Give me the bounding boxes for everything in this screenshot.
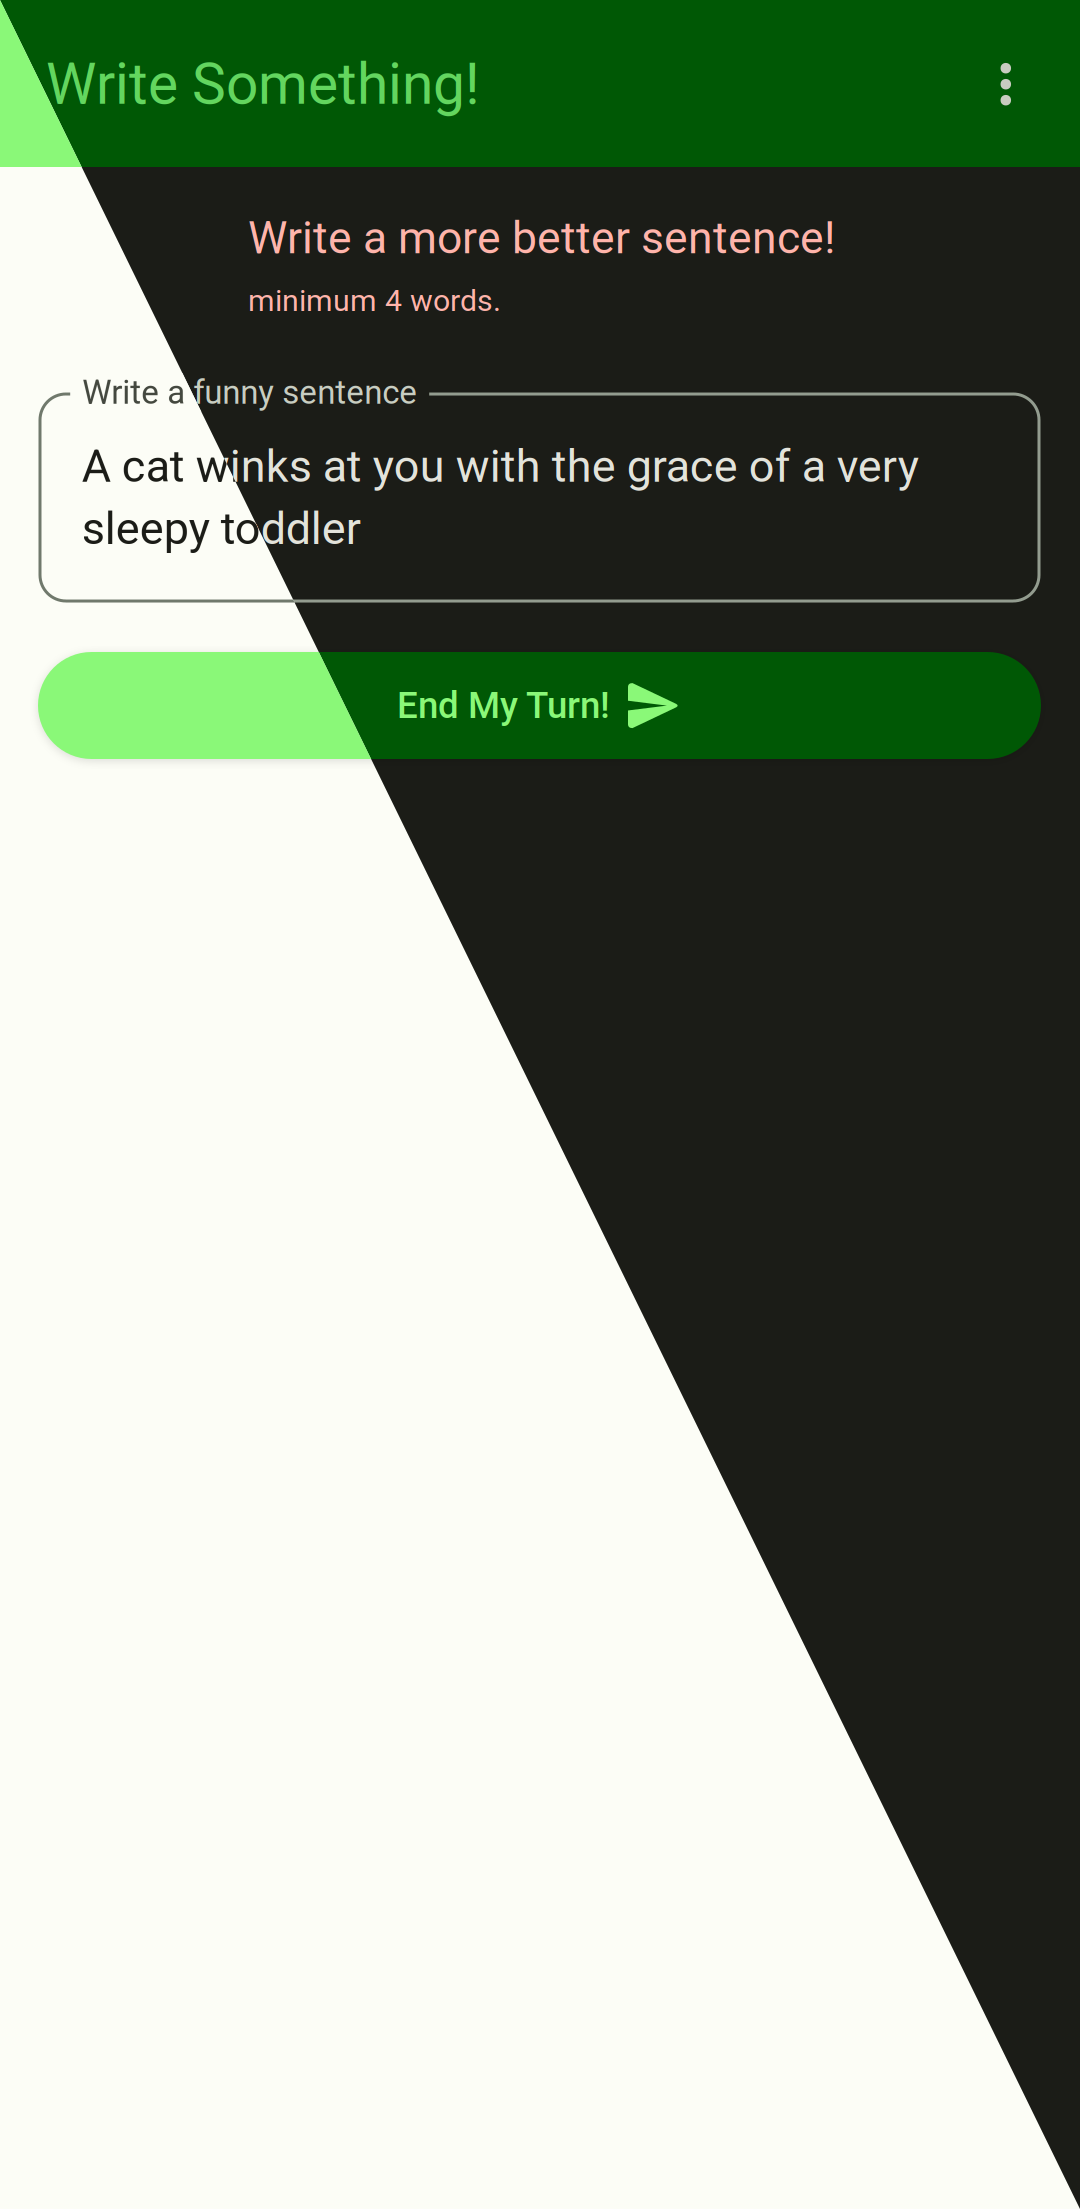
staticText: Write Something!	[46, 51, 480, 118]
staticText: sleepy toddler	[82, 502, 361, 555]
staticText: Write a funny sentence	[82, 373, 417, 412]
staticText: minimum 4 words.	[248, 283, 501, 318]
button[interactable]: End My Turn!	[38, 652, 1041, 759]
staticText: Write a more better sentence!	[248, 212, 835, 264]
button[interactable]: More options	[951, 29, 1061, 139]
staticText: End My Turn!	[397, 684, 610, 727]
staticText: A cat winks at you with the grace of a v…	[82, 440, 919, 493]
